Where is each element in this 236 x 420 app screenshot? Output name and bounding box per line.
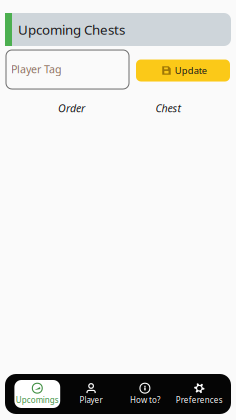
staticText: Player — [80, 395, 103, 405]
staticText: Update — [175, 64, 207, 77]
button[interactable]: How to? — [118, 380, 172, 408]
staticText: How to? — [130, 395, 160, 405]
staticText: Preferences — [176, 395, 223, 405]
staticText: Order — [58, 101, 85, 115]
staticText: Chest — [155, 101, 181, 115]
button[interactable]: Preferences — [172, 380, 226, 408]
staticText: Upcomings — [16, 395, 59, 405]
button[interactable]: Player — [64, 380, 118, 408]
staticText: Upcoming Chests — [18, 21, 125, 38]
staticText: Player Tag — [11, 62, 62, 76]
button[interactable]: Update — [136, 59, 230, 81]
button[interactable]: Upcomings — [10, 380, 64, 408]
